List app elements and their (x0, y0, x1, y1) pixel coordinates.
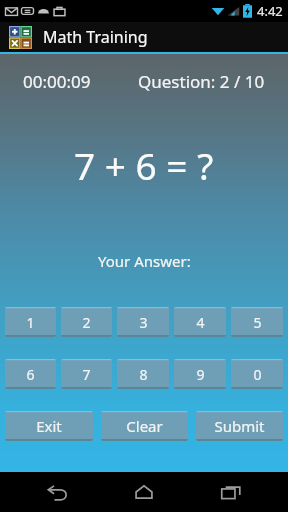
staticText: Math Training (43, 26, 148, 48)
button[interactable]: 1 (5, 307, 56, 337)
staticText: 4 (196, 313, 205, 332)
button[interactable]: Back (29, 472, 87, 512)
button[interactable]: 4 (174, 307, 226, 337)
button[interactable]: Clear (101, 411, 188, 441)
staticText: Submit (214, 416, 265, 436)
button[interactable]: 3 (117, 307, 169, 337)
staticText: Clear (126, 416, 163, 436)
button[interactable]: 5 (231, 307, 283, 337)
staticText: 1 (26, 313, 35, 332)
staticText: Your Answer: (98, 251, 191, 271)
staticText: 0 (253, 365, 262, 384)
button[interactable]: Home (115, 472, 173, 512)
button[interactable]: 0 (231, 359, 283, 389)
button[interactable]: Recent apps (202, 472, 260, 512)
button[interactable]: 2 (61, 307, 112, 337)
button[interactable]: Exit (5, 411, 93, 441)
staticText: 7 + 6 = ? (74, 140, 214, 190)
button[interactable]: 6 (5, 359, 56, 389)
staticText: 5 (253, 313, 262, 332)
staticText: Exit (36, 416, 62, 436)
staticText: 8 (139, 365, 148, 384)
staticText: 00:00:09 (23, 70, 91, 93)
staticText: Question: 2 / 10 (138, 70, 265, 93)
staticText: 9 (196, 365, 205, 384)
button[interactable]: 7 (61, 359, 112, 389)
button[interactable]: Submit (196, 411, 283, 441)
staticText: 3 (139, 313, 148, 332)
button[interactable]: 8 (117, 359, 169, 389)
staticText: 4:42 (257, 2, 283, 20)
staticText: 6 (26, 365, 35, 384)
button[interactable]: 9 (174, 359, 226, 389)
staticText: 7 (82, 365, 91, 384)
staticText: 2 (82, 313, 91, 332)
